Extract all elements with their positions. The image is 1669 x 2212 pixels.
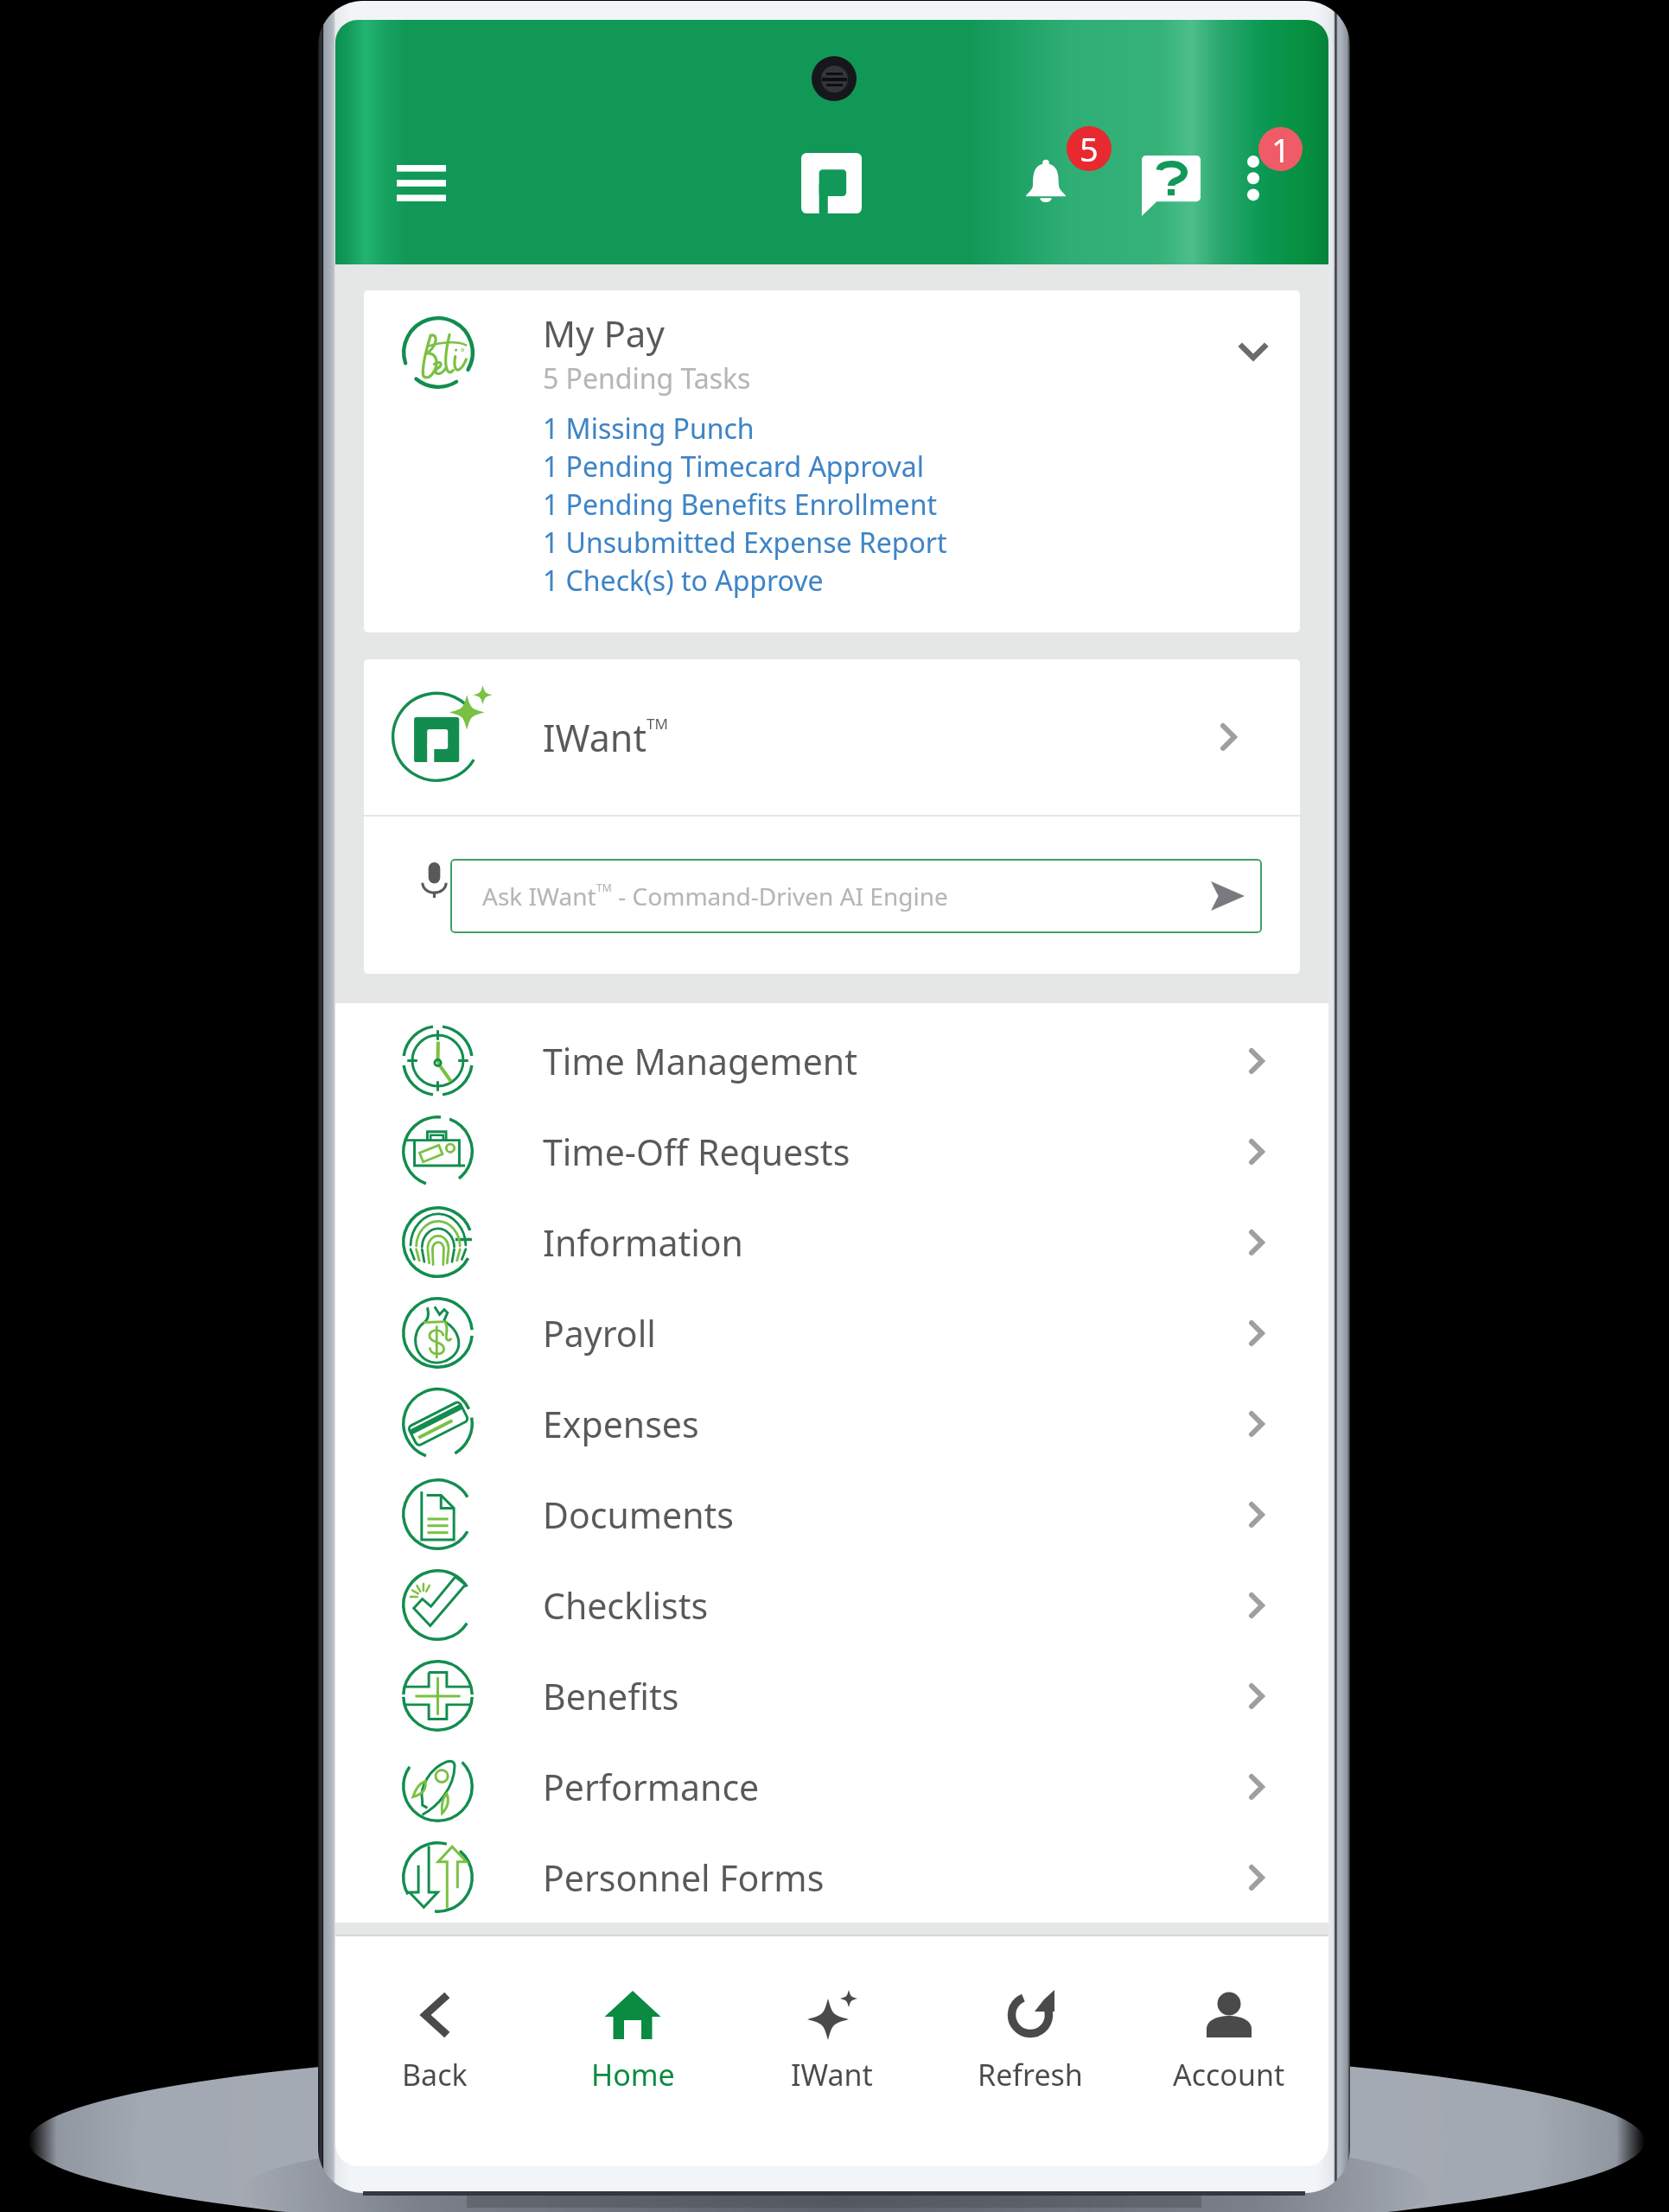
staticText: IWant [543, 712, 647, 763]
staticText: IWant [791, 2055, 873, 2094]
button[interactable]: Time-Off Requests [335, 1106, 1328, 1197]
button[interactable]: IWant [364, 659, 1300, 815]
staticText: Benefits [543, 1672, 679, 1720]
button[interactable]: Expenses [335, 1378, 1328, 1469]
staticText: Performance [543, 1763, 760, 1811]
staticText: 1 Check(s) to Approve [543, 562, 824, 600]
staticText: Checklists [543, 1581, 709, 1630]
button[interactable]: Payroll [335, 1287, 1328, 1378]
staticText: Back [402, 2055, 468, 2094]
button[interactable]: Send [1197, 866, 1258, 926]
staticText: Payroll [543, 1309, 656, 1357]
staticText: 5 Pending Tasks [543, 359, 751, 397]
staticText: 1 Unsubmitted Expense Report [543, 524, 947, 562]
button[interactable]: IWant [732, 1936, 931, 2166]
button[interactable]: Ask IWant [450, 859, 1262, 933]
staticText: Personnel Forms [543, 1853, 825, 1902]
button[interactable]: Information [335, 1197, 1328, 1287]
button[interactable]: Checklists [335, 1560, 1328, 1650]
button[interactable]: Home [533, 1936, 732, 2166]
button[interactable]: 1 Check(s) to Approve [543, 562, 824, 600]
button[interactable]: Help [1124, 141, 1220, 232]
staticText: TM [596, 880, 612, 894]
staticText: 1 Missing Punch [543, 410, 755, 448]
staticText: 1 Pending Timecard Approval [543, 448, 924, 486]
staticText: 1 [1271, 127, 1290, 171]
button[interactable]: Back [335, 1936, 533, 2166]
staticText: TM [647, 714, 668, 734]
staticText: 5 [1080, 126, 1099, 171]
button[interactable]: Open navigation menu [385, 147, 457, 219]
staticText: Refresh [978, 2055, 1083, 2094]
button[interactable]: Account [1130, 1936, 1328, 2166]
button[interactable]: More options [1224, 125, 1328, 232]
staticText: Ask IWant [482, 880, 596, 912]
staticText: - Command-Driven AI Engine [612, 880, 948, 912]
staticText: Expenses [543, 1400, 699, 1448]
button[interactable]: Paycom home [788, 140, 875, 226]
button[interactable]: Collapse My Pay [1179, 301, 1300, 403]
button[interactable]: 1 Pending Benefits Enrollment [543, 486, 937, 524]
button[interactable]: Personnel Forms [335, 1832, 1328, 1923]
staticText: Information [543, 1218, 743, 1267]
button[interactable]: 1 Missing Punch [543, 410, 755, 448]
button[interactable]: 1 Unsubmitted Expense Report [543, 524, 947, 562]
staticText: Documents [543, 1491, 734, 1539]
button[interactable]: Time Management [335, 1015, 1328, 1106]
button[interactable]: Voice input [402, 847, 466, 912]
staticText: Time Management [543, 1037, 857, 1085]
staticText: My Pay [543, 308, 665, 358]
button[interactable]: Refresh [931, 1936, 1130, 2166]
button[interactable]: Notifications [1002, 126, 1140, 243]
button[interactable]: Benefits [335, 1650, 1328, 1741]
staticText: 1 Pending Benefits Enrollment [543, 486, 937, 524]
staticText: Time-Off Requests [543, 1128, 850, 1176]
button[interactable]: 1 Pending Timecard Approval [543, 448, 924, 486]
button[interactable]: Performance [335, 1741, 1328, 1832]
staticText: Account [1173, 2055, 1285, 2094]
button[interactable]: Documents [335, 1469, 1328, 1560]
button[interactable]: My Pay [364, 290, 1300, 632]
staticText: Home [591, 2055, 675, 2094]
